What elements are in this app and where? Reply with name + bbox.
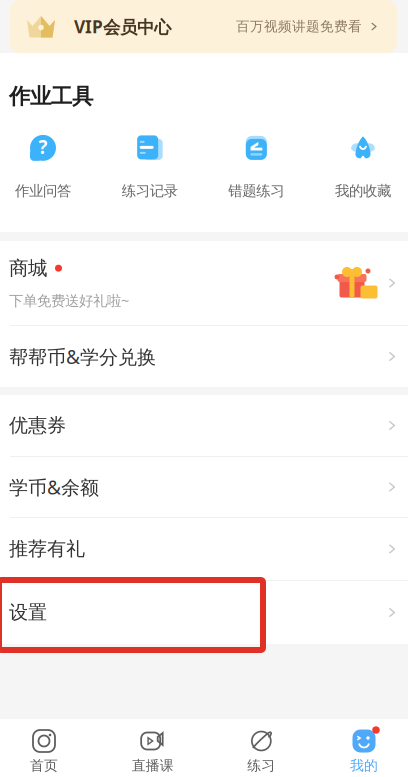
button[interactable]: 学币&余额 (0, 457, 408, 517)
staticText: 我的 (350, 757, 378, 774)
staticText: 帮帮币&学分兑换 (9, 343, 156, 369)
staticText: 直播课 (132, 757, 174, 774)
staticText: 练习记录 (122, 182, 178, 200)
staticText: ? (38, 134, 47, 160)
staticText: 错题练习 (228, 182, 284, 200)
button[interactable]: 错题练习 (228, 135, 284, 200)
button[interactable]: 练习 (246, 728, 276, 774)
button[interactable]: VIP会员中心 (10, 0, 397, 53)
staticText: VIP会员中心 (74, 15, 171, 38)
staticText: 作业工具 (9, 83, 93, 110)
staticText: 首页 (30, 757, 58, 774)
staticText: 学币&余额 (9, 474, 99, 500)
staticText: 下单免费送好礼啦~ (9, 290, 129, 310)
staticText: 优惠券 (9, 413, 66, 437)
staticText: 百万视频讲题免费看 (236, 18, 362, 35)
button[interactable]: 我的 (349, 728, 379, 774)
button[interactable]: 优惠券 (0, 395, 408, 456)
staticText: 商城 (9, 256, 47, 280)
staticText: 作业问答 (15, 182, 71, 200)
staticText: 推荐有礼 (9, 537, 85, 561)
button[interactable]: 首页 (29, 728, 59, 774)
button[interactable]: 推荐有礼 (0, 518, 408, 580)
staticText: 练习 (247, 757, 275, 774)
staticText: 设置 (9, 600, 47, 624)
staticText: 我的收藏 (335, 182, 391, 200)
button[interactable]: 直播课 (132, 728, 174, 774)
button[interactable]: ? (15, 135, 71, 200)
button[interactable]: 我的收藏 (335, 135, 391, 200)
button[interactable]: 设置 (0, 581, 408, 644)
button[interactable]: 商城 (0, 241, 408, 325)
button[interactable]: 练习记录 (122, 135, 178, 200)
button[interactable]: 帮帮币&学分兑换 (0, 326, 408, 387)
